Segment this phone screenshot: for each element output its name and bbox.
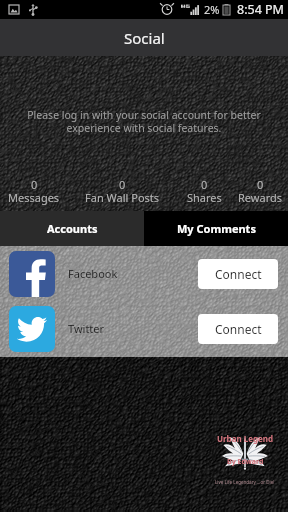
staticText: Please log in with your social account f… xyxy=(26,108,262,135)
staticText: 0 xyxy=(201,177,208,192)
other: Battery 2 percent xyxy=(223,4,230,15)
staticText: Rewards xyxy=(238,190,282,205)
button[interactable]: 0 xyxy=(68,177,176,207)
button[interactable]: Twitter xyxy=(0,301,288,356)
staticText: Social xyxy=(124,28,165,48)
button[interactable]: Connect xyxy=(198,314,278,344)
staticText: 0 xyxy=(119,177,126,192)
staticText: Urban Legend xyxy=(217,433,274,444)
staticText: My Comments xyxy=(177,221,256,236)
other: Screenshot saved xyxy=(9,5,19,14)
staticText: 0 xyxy=(257,177,264,192)
button[interactable]: 0 xyxy=(232,177,288,207)
staticText: Messages xyxy=(8,190,60,205)
staticText: 2% xyxy=(204,2,220,17)
button[interactable]: 0 xyxy=(0,177,68,207)
staticText: Accounts xyxy=(47,221,98,236)
staticText: 8:54 PM xyxy=(237,1,284,18)
staticText: Connect xyxy=(215,321,262,337)
staticText: Fan Wall Posts xyxy=(85,190,160,205)
staticText: Twitter xyxy=(68,321,105,336)
button[interactable]: Connect xyxy=(198,259,278,289)
staticText: Facebook xyxy=(68,266,118,281)
staticText: By Edward xyxy=(227,457,264,467)
staticText: 0 xyxy=(31,177,38,192)
staticText: Connect xyxy=(215,266,262,282)
button[interactable]: My Comments xyxy=(144,211,288,246)
other: USB connected xyxy=(29,4,37,15)
button[interactable]: Accounts xyxy=(0,211,144,246)
other: Mobile signal xyxy=(181,4,198,15)
staticText: Live Life Legendary ...or Die! xyxy=(215,479,275,485)
other: Alarm set xyxy=(161,4,173,15)
staticText: Shares xyxy=(187,190,222,205)
button[interactable]: 0 xyxy=(176,177,232,207)
button[interactable]: Facebook xyxy=(0,246,288,301)
